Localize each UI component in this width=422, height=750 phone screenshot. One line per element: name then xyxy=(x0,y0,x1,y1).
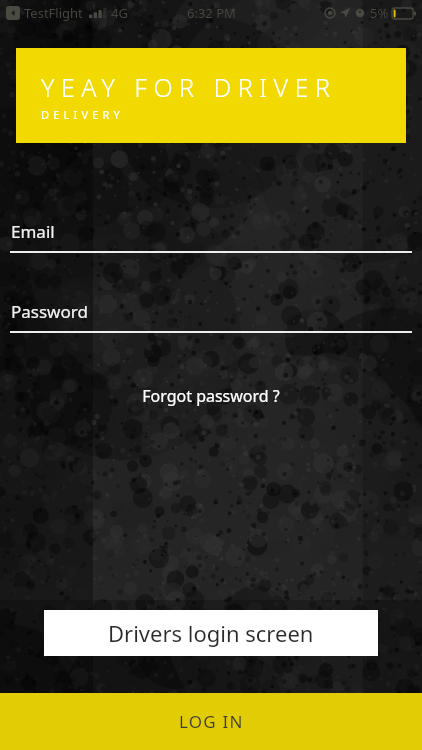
staticText: LOG IN xyxy=(179,710,244,733)
button[interactable]: Password xyxy=(0,292,422,331)
staticText: 4G xyxy=(111,4,128,22)
staticText: Email xyxy=(11,220,55,243)
staticText: Password xyxy=(11,300,88,323)
button[interactable]: Email xyxy=(0,212,422,251)
staticText: TestFlight xyxy=(24,4,83,22)
staticText: DELIVERY xyxy=(41,107,125,122)
staticText: 6:32 PM xyxy=(187,4,236,22)
button[interactable]: LOG IN xyxy=(0,693,422,750)
staticText: Drivers login screen xyxy=(108,618,314,648)
staticText: Forgot password ? xyxy=(142,385,280,407)
staticText: YEAY FOR DRIVER xyxy=(41,70,337,104)
button[interactable]: Forgot password ? xyxy=(0,381,422,411)
button[interactable]: Drivers login screen xyxy=(44,610,378,656)
staticText: 5% xyxy=(370,4,389,22)
